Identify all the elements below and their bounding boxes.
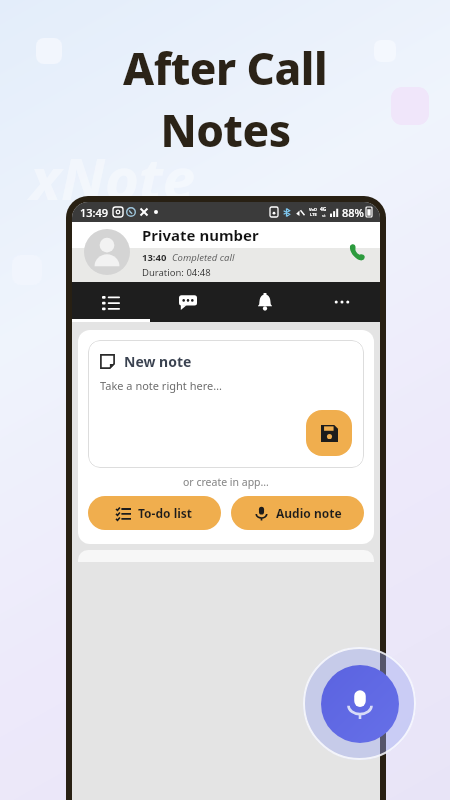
staticText: st — [322, 213, 326, 218]
staticText: New note — [124, 352, 192, 371]
button[interactable]: Notes list — [72, 282, 149, 322]
staticText: VoD — [309, 207, 317, 212]
staticText: LTE — [310, 212, 317, 217]
staticText: Duration: 04:48 — [142, 266, 211, 279]
staticText: Completed call — [172, 251, 235, 264]
staticText: Audio note — [276, 505, 342, 521]
button[interactable]: New note — [88, 340, 364, 468]
staticText: 13:49 — [80, 205, 109, 220]
staticText: xNote — [30, 138, 195, 217]
button[interactable]: Save note — [306, 410, 352, 456]
staticText: or create in app… — [183, 475, 269, 489]
button[interactable]: To-do list — [88, 496, 221, 530]
staticText: 4G — [320, 206, 327, 213]
staticText: To-do list — [138, 505, 193, 521]
staticText: After Call — [123, 38, 327, 98]
button[interactable]: Audio note — [231, 496, 364, 530]
button[interactable]: Reminders — [226, 282, 303, 322]
staticText: 13:40 — [142, 251, 167, 264]
button[interactable]: Call back — [338, 233, 376, 271]
staticText: Take a note right here… — [100, 378, 222, 393]
staticText: Private number — [142, 225, 259, 245]
button[interactable]: Messages — [149, 282, 226, 322]
staticText: 88% — [342, 205, 364, 220]
button[interactable]: More options — [303, 282, 380, 322]
staticText: Notes — [160, 100, 291, 160]
button[interactable]: Record audio note — [321, 665, 399, 743]
